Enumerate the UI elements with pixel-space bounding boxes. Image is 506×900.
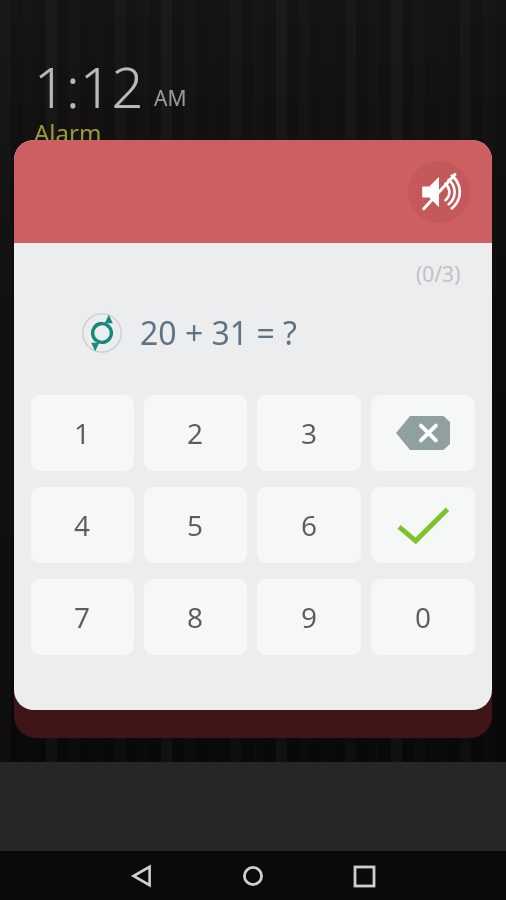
staticText: 1:12	[34, 48, 144, 124]
button[interactable]: 3	[257, 395, 361, 471]
staticText: 0	[415, 598, 432, 636]
button[interactable]: 2	[144, 395, 247, 471]
button[interactable]: Backspace	[371, 395, 475, 471]
button[interactable]: 0	[371, 579, 475, 655]
button[interactable]: Mute	[408, 161, 470, 223]
button[interactable]: Recents	[340, 852, 388, 900]
staticText: 2	[187, 414, 204, 452]
staticText: 5	[187, 506, 204, 544]
staticText: 7	[74, 598, 91, 636]
button[interactable]: 1	[31, 395, 134, 471]
staticText: 20 + 31 = ?	[140, 311, 297, 355]
staticText: (0/3)	[416, 260, 461, 289]
staticText: 6	[301, 506, 318, 544]
button[interactable]: Refresh question	[82, 313, 122, 353]
button[interactable]: Home	[229, 852, 277, 900]
staticText: 9	[301, 598, 318, 636]
button[interactable]: 9	[257, 579, 361, 655]
staticText: Alarm	[34, 116, 102, 149]
button[interactable]: Confirm	[371, 487, 475, 563]
button[interactable]: Back	[118, 852, 166, 900]
staticText: 3	[301, 414, 318, 452]
staticText: 8	[187, 598, 204, 636]
button[interactable]: 5	[144, 487, 247, 563]
staticText: 4	[74, 506, 91, 544]
button[interactable]: 4	[31, 487, 134, 563]
button[interactable]: 8	[144, 579, 247, 655]
staticText: 1	[74, 414, 91, 452]
staticText: AM	[154, 84, 187, 113]
button[interactable]: 6	[257, 487, 361, 563]
button[interactable]: 7	[31, 579, 134, 655]
